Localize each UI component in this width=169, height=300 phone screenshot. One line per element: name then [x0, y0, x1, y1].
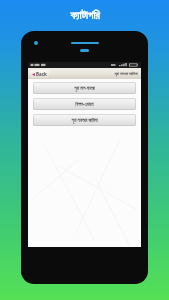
other: Back: [32, 73, 35, 76]
button[interactable]: Back: [30, 70, 49, 78]
button[interactable]: সূরা নাবআর জামিনা: [33, 114, 136, 126]
staticText: Back: [36, 71, 47, 77]
staticText: সূরা নাস-নাবআ: [74, 85, 95, 91]
button[interactable]: সূরা নাস-নাবআ: [33, 82, 136, 94]
button[interactable]: কিলন-এমারত: [33, 98, 136, 110]
staticText: সূরা নাবআ আমিনা: [114, 71, 138, 77]
staticText: সূরা নাবআর জামিনা: [71, 117, 98, 123]
staticText: ক্যাটাগরি: [70, 10, 100, 21]
staticText: কিলন-এমারত: [75, 101, 94, 107]
